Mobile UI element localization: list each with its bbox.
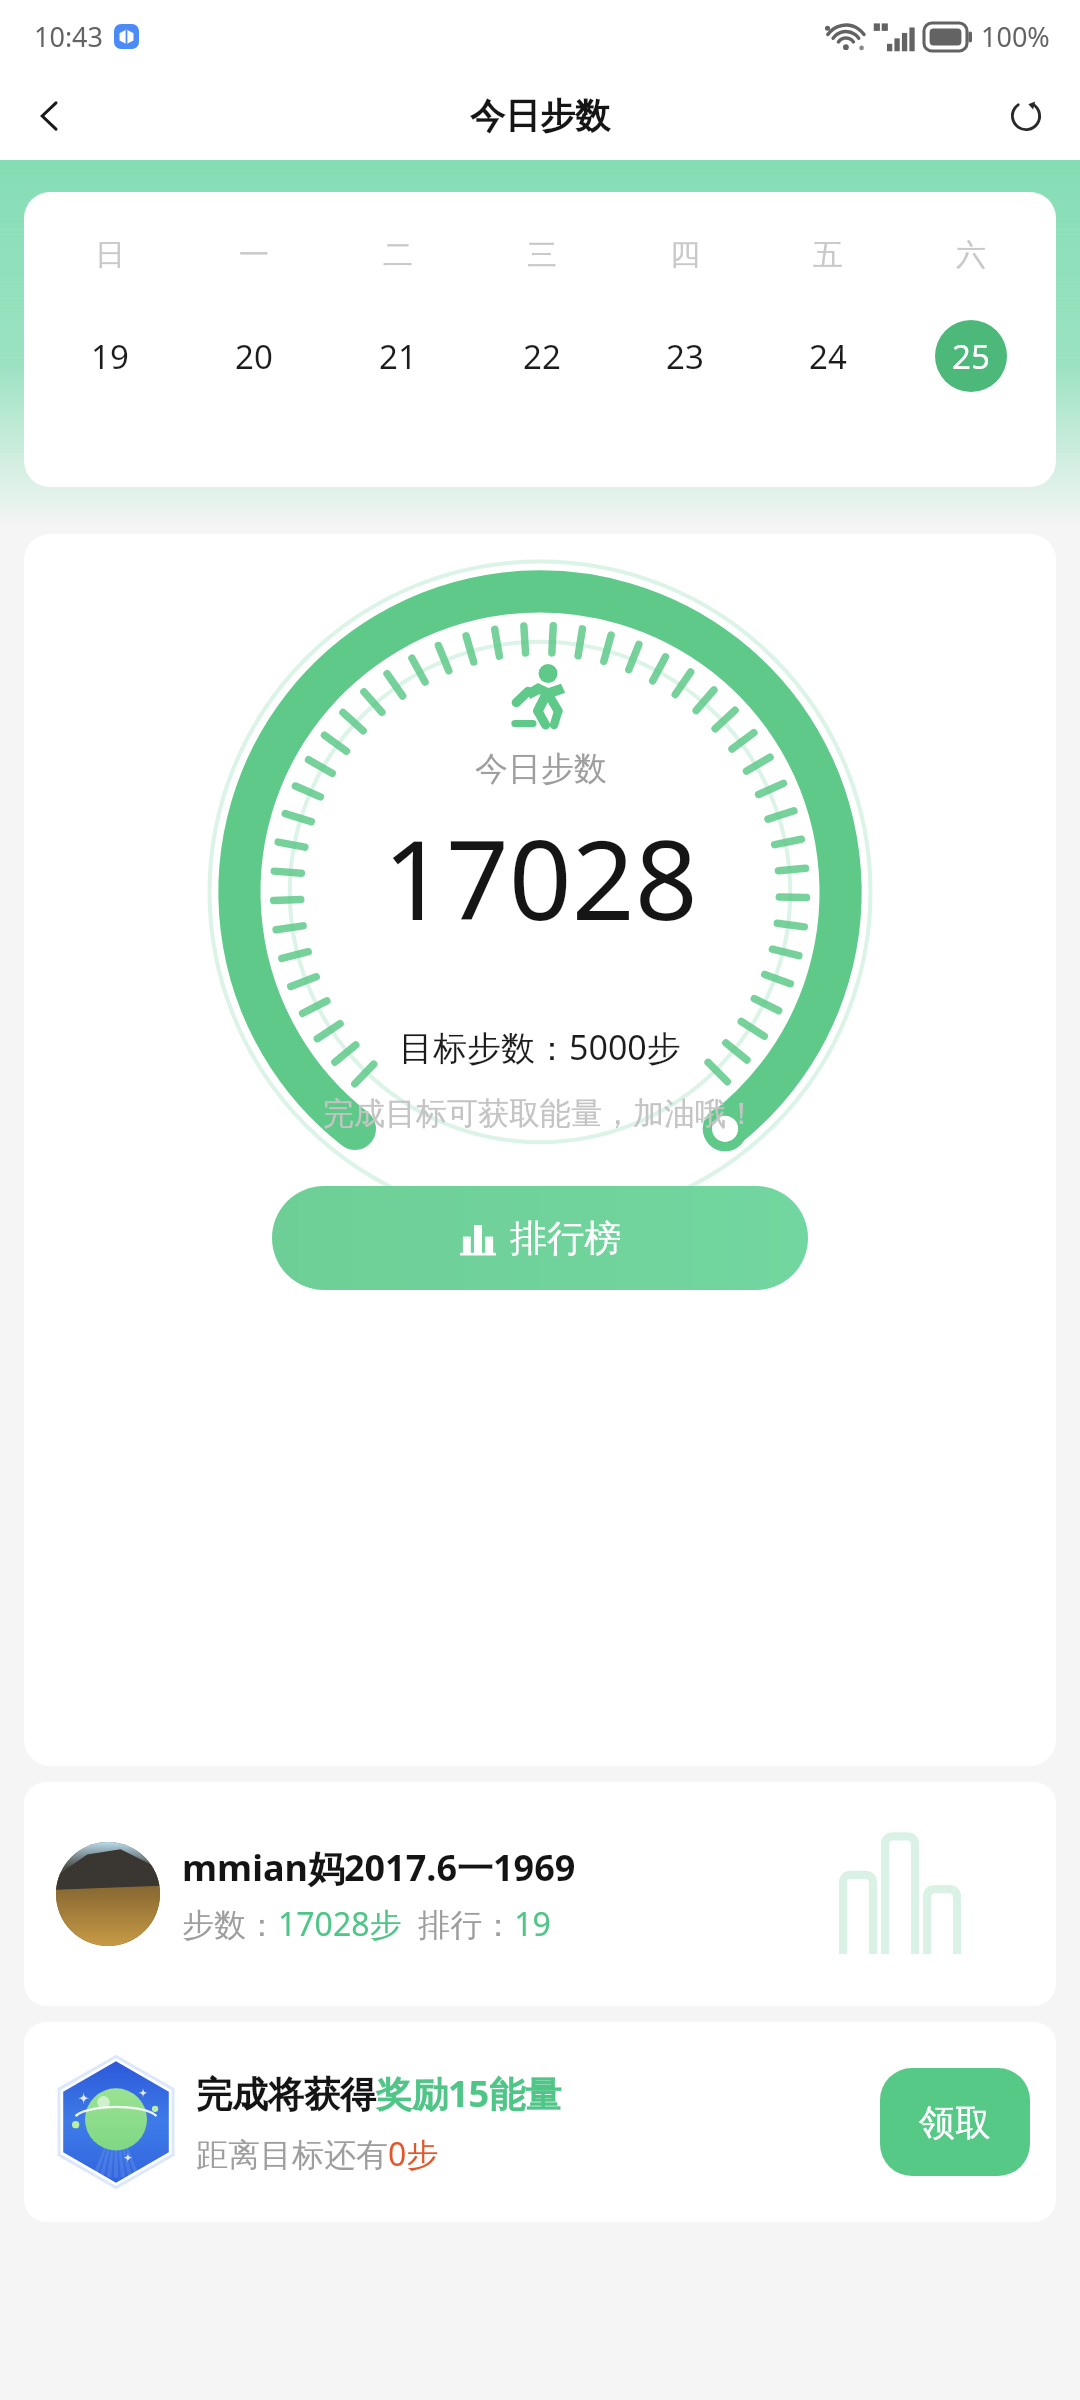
staticText: 距离目标还有0步 [196,2132,439,2176]
button[interactable]: 25 [899,320,1042,392]
button[interactable]: 20 [182,320,326,392]
staticText: 10:43 [34,18,104,55]
button[interactable]: 排行榜 [272,1186,808,1290]
staticText: 一 [239,236,269,274]
staticText: 目标步数：5000步 [399,1024,681,1070]
staticText: 步数：17028步 排行：19 [182,1902,551,1946]
staticText: 17028 [383,802,698,952]
staticText: 完成将获得奖励15能量 [196,2069,562,2118]
button[interactable]: 22 [470,320,613,392]
staticText: 四 [670,236,700,274]
staticText: 100% [981,18,1050,55]
staticText: 23 [666,334,704,379]
staticText: 19 [91,334,129,379]
button[interactable]: Share [994,84,1058,148]
staticText: 领取 [919,2100,991,2145]
button[interactable]: 23 [613,320,756,392]
staticText: 25 [952,334,990,379]
staticText: 今日步数 [475,748,607,790]
staticText: 今日步数 [470,94,610,138]
staticText: 22 [523,334,561,379]
staticText: 完成目标可获取能量，加油哦！ [323,1094,757,1133]
button[interactable]: Back [18,84,82,148]
staticText: 三 [527,236,557,274]
button[interactable]: 19 [38,320,182,392]
staticText: 二 [383,236,413,274]
staticText: 日 [95,236,125,274]
staticText: 排行榜 [510,1215,621,1262]
button[interactable]: 领取 [880,2068,1030,2176]
staticText: 24 [809,334,847,379]
button[interactable]: 24 [756,320,899,392]
staticText: 五 [813,236,843,274]
staticText: 六 [956,236,986,274]
button[interactable]: mmian妈2017.6一1969 [24,1782,1056,2006]
button[interactable]: 21 [326,320,470,392]
staticText: 21 [379,334,417,379]
staticText: mmian妈2017.6一1969 [182,1843,576,1892]
staticText: 20 [235,334,273,379]
